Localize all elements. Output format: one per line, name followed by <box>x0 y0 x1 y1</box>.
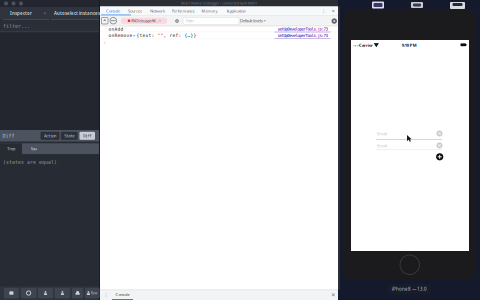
button[interactable]: RNDebuggerW... <box>121 18 167 24</box>
staticText: "" <box>157 33 163 38</box>
staticText: , ref: {…}} <box>163 33 196 38</box>
button[interactable]: setUpDeveloperTools.js:73 <box>274 26 338 32</box>
staticText: Raw <box>30 146 36 151</box>
staticText: Diff <box>83 133 91 138</box>
staticText: Action <box>44 133 56 138</box>
staticText: onAdd <box>108 27 123 32</box>
button[interactable]: Inspector <box>8 7 48 19</box>
staticText: Memory <box>201 8 217 14</box>
staticText: › <box>104 39 105 46</box>
button[interactable]: Network <box>146 6 169 15</box>
button[interactable]: State <box>61 132 77 140</box>
button[interactable]: Application <box>222 6 250 15</box>
staticText: Autoselect instances <box>54 10 100 16</box>
button[interactable]: setUpDeveloperTools.js:73 <box>274 32 338 39</box>
staticText: ⋮ <box>104 293 108 297</box>
staticText: Network <box>150 8 165 14</box>
staticText: ▾ <box>159 19 160 22</box>
button[interactable]: More tools <box>102 290 110 300</box>
button[interactable]: Add email field <box>434 151 445 162</box>
button[interactable]: Close drawer <box>328 290 338 300</box>
button[interactable]: Memory <box>197 6 222 15</box>
staticText: ⋮ <box>321 8 326 14</box>
button[interactable]: Console settings <box>332 18 337 24</box>
staticText: ▾ <box>264 19 265 22</box>
button[interactable]: Raw <box>22 143 45 154</box>
button[interactable]: Inspector tool 4 <box>55 288 70 298</box>
button[interactable]: Raw <box>85 288 100 298</box>
button[interactable]: Clear console <box>110 17 116 24</box>
staticText: Inspector <box>10 10 32 16</box>
button[interactable]: Live expressions <box>174 19 179 23</box>
staticText: iPhone 8 — 13.0 <box>392 286 427 292</box>
button[interactable]: Inspector tool 3 <box>38 288 53 298</box>
staticText: RNDebuggerW... <box>131 18 158 23</box>
staticText: onRemove <box>108 33 132 38</box>
staticText: Console <box>115 292 129 297</box>
staticText: Application <box>226 8 245 14</box>
button[interactable]: Sources <box>124 6 146 15</box>
button[interactable]: Close DevTools <box>328 6 338 15</box>
staticText: ▸ <box>132 33 136 37</box>
staticText: Raw <box>91 291 98 295</box>
staticText: React Native Debugger - Connected (port … <box>181 1 257 6</box>
staticText: Console <box>106 8 120 14</box>
staticText: Performance <box>171 8 194 14</box>
button[interactable]: Email <box>376 140 436 151</box>
button[interactable]: Clear text <box>435 141 444 150</box>
staticText: ▾ <box>44 11 46 15</box>
staticText: Email <box>377 131 387 136</box>
staticText: Tree <box>7 146 15 151</box>
staticText: State <box>64 133 74 138</box>
button[interactable]: Console <box>110 290 135 300</box>
button[interactable]: Console <box>102 6 124 15</box>
staticText: Email <box>377 143 387 148</box>
button[interactable]: Action <box>40 132 59 140</box>
staticText: ✕ <box>331 292 335 298</box>
button[interactable]: Tree <box>0 143 22 154</box>
staticText: Diff <box>2 133 14 139</box>
button[interactable]: Diff <box>79 132 95 140</box>
button[interactable]: Inspector tool 5 <box>72 288 83 298</box>
button[interactable]: Default levels <box>240 17 272 24</box>
button[interactable]: Email <box>376 128 436 139</box>
staticText: filter... <box>3 23 30 29</box>
button[interactable]: Show console sidebar <box>101 17 108 24</box>
staticText: {text: <box>136 33 157 38</box>
staticText: Filter <box>185 18 194 23</box>
button[interactable]: Autoselect instances <box>54 7 100 19</box>
button[interactable]: Clear text <box>435 129 444 138</box>
staticText: 9:10 PM <box>402 42 417 48</box>
button[interactable]: Performance <box>169 6 197 15</box>
staticText: setUpDeveloperTools.js:73 <box>277 27 327 31</box>
staticText: Carrier <box>359 42 373 48</box>
staticText: Sources <box>128 8 142 14</box>
staticText: ✕ <box>331 9 334 13</box>
button[interactable]: Inspector tool 2 <box>21 288 36 298</box>
staticText: Default levels <box>240 18 263 23</box>
staticText: setUpDeveloperTools.js:73 <box>277 33 327 38</box>
button[interactable]: More options <box>320 6 328 15</box>
staticText: (states are equal) <box>3 159 57 165</box>
button[interactable]: Inspector tool 1 <box>4 288 19 298</box>
